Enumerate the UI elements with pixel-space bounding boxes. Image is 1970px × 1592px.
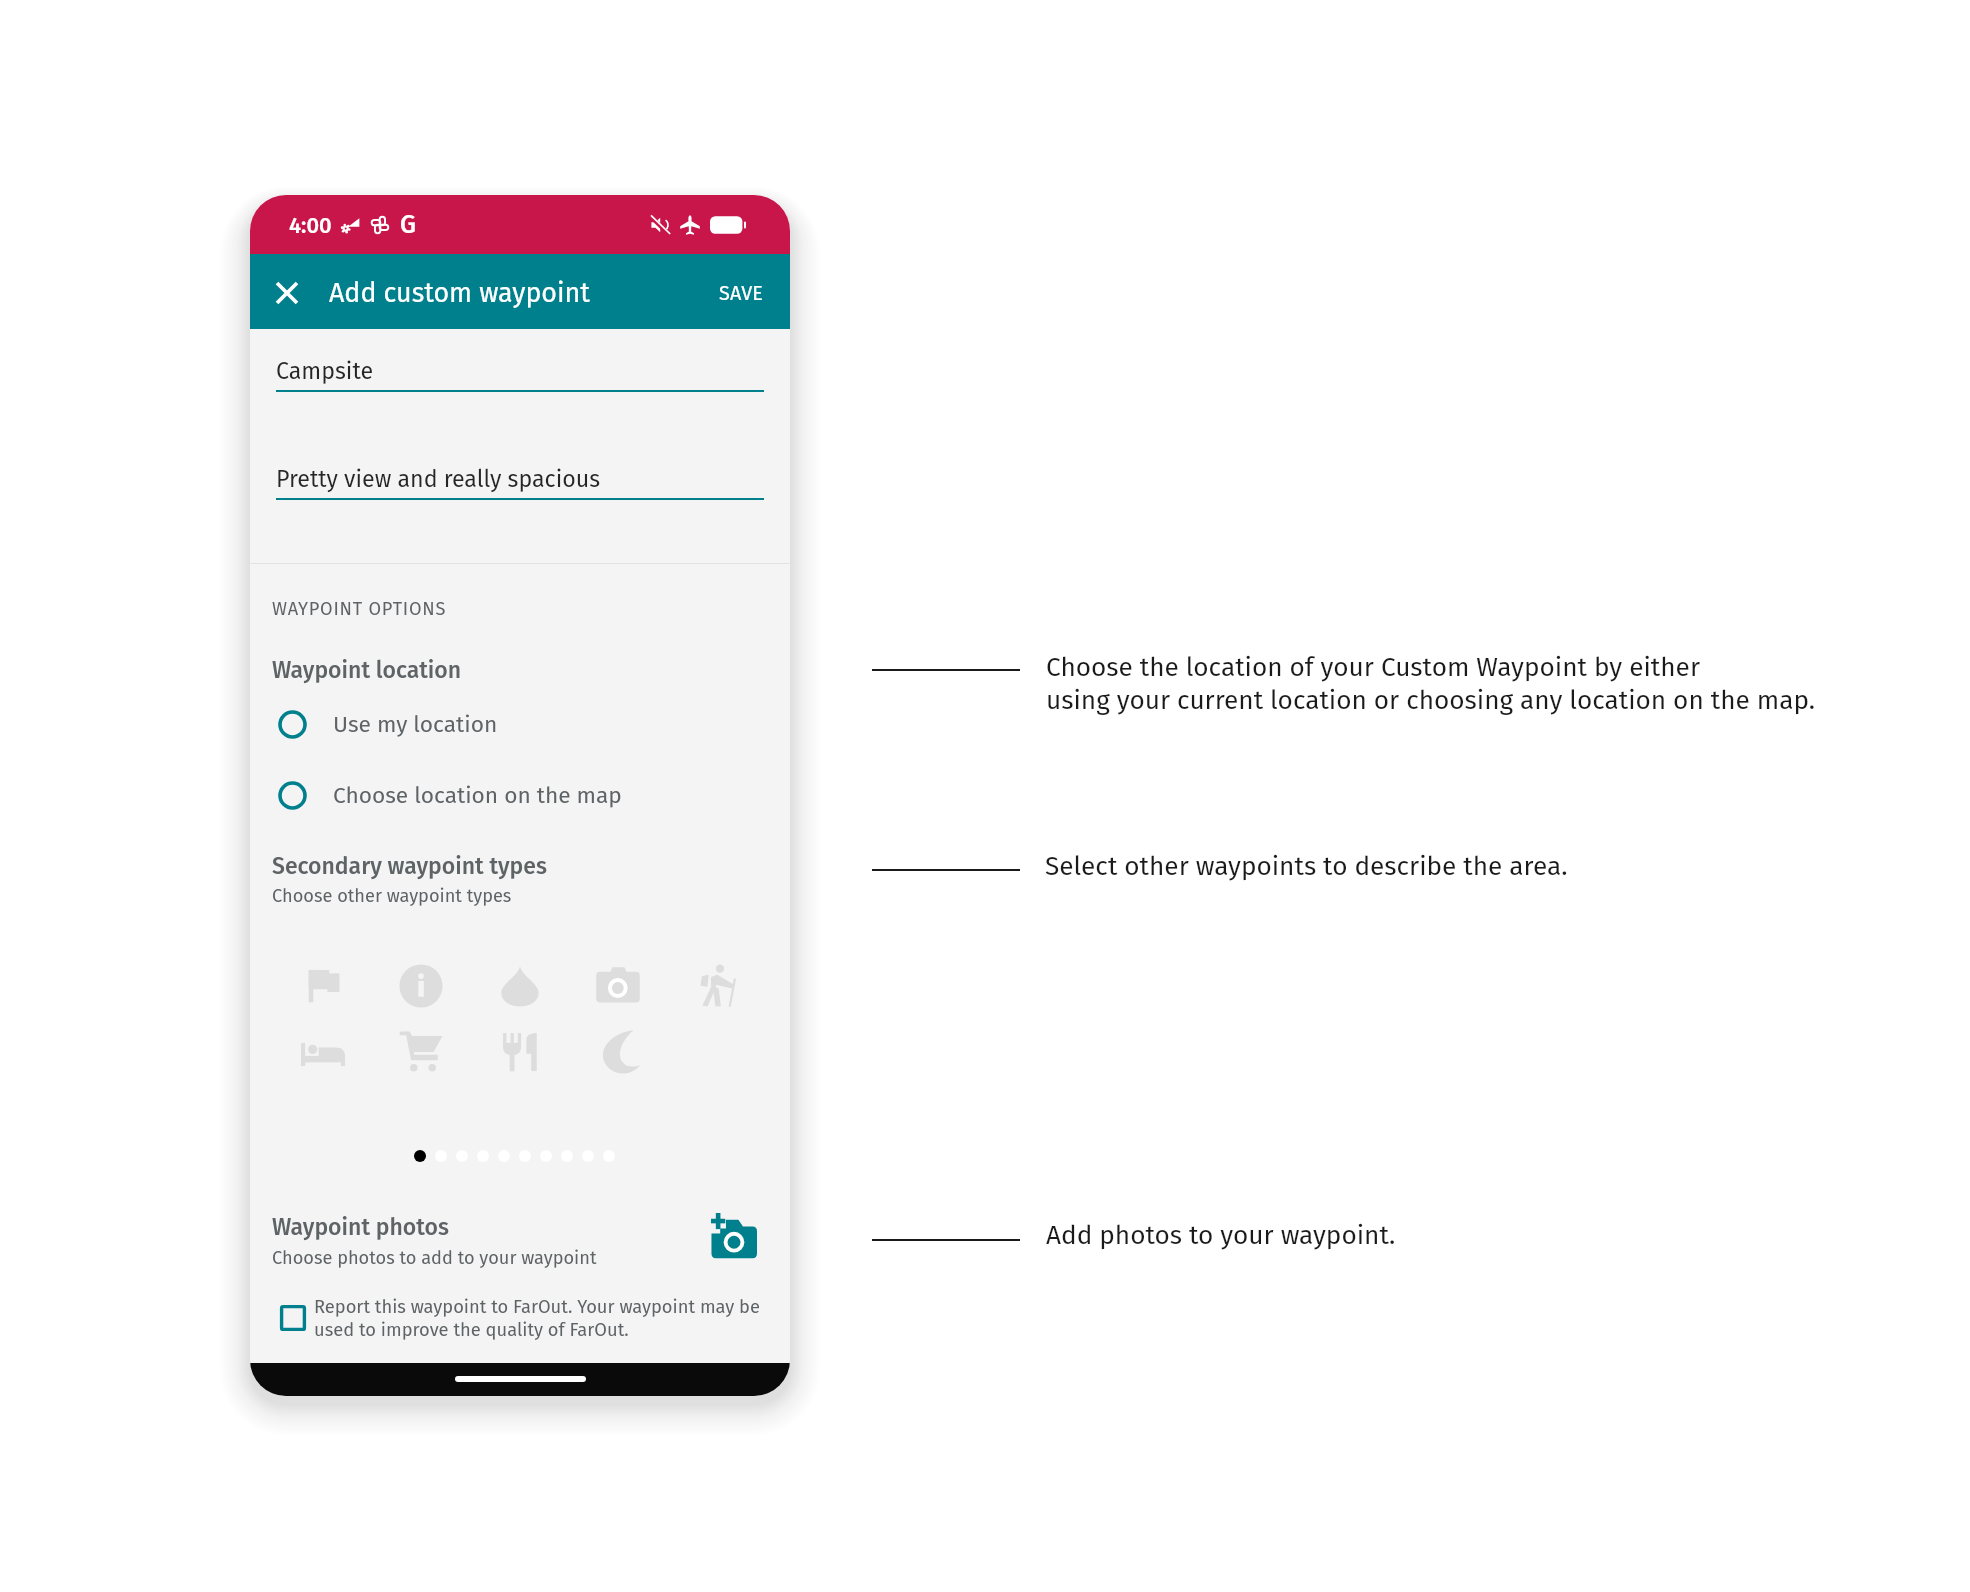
staticText: Use my location [333,711,498,738]
staticText: Select other waypoints to describe the a… [1045,851,1568,882]
button[interactable]: Page 2 [435,1150,447,1162]
staticText: G [400,210,416,240]
button[interactable]: Add photo [711,1213,757,1259]
button[interactable]: Report this waypoint to FarOut. Your way… [280,1294,772,1342]
button[interactable]: Page 10 [603,1150,615,1162]
button[interactable]: Flag waypoint [301,964,345,1008]
button[interactable]: Page 7 [540,1150,552,1162]
staticText: SAVE [719,281,764,305]
staticText: Choose location on the map [333,782,622,809]
staticText: Waypoint location [272,656,462,684]
button[interactable]: Photo waypoint [596,964,640,1008]
button[interactable]: Page 4 [477,1150,489,1162]
staticText: Add photos to your waypoint. [1046,1220,1396,1251]
button[interactable]: Page 5 [498,1150,510,1162]
staticText: Waypoint photos [272,1213,449,1241]
button[interactable]: Lodging waypoint [301,1030,345,1074]
staticText: WAYPOINT OPTIONS [272,598,447,620]
button[interactable]: Use my location [250,698,790,750]
button[interactable]: Page 1 [414,1150,426,1162]
button[interactable]: Close [263,268,311,316]
button[interactable]: Page 3 [456,1150,468,1162]
button[interactable]: Page 6 [519,1150,531,1162]
staticText: Choose other waypoint types [272,885,512,907]
button[interactable]: Info waypoint [399,964,443,1008]
staticText: Pretty view and really spacious [276,465,601,493]
staticText: 4:00 [289,212,332,238]
staticText: Choose photos to add to your waypoint [272,1247,597,1269]
button[interactable]: Waypoint photos [250,1211,790,1285]
button[interactable]: Resupply waypoint [399,1030,443,1074]
button[interactable]: Water waypoint [498,964,542,1008]
button[interactable]: Food waypoint [498,1030,542,1074]
button[interactable]: Choose location on the map [250,769,790,821]
button[interactable]: Trail waypoint [698,964,742,1008]
button[interactable]: Pretty view and really spacious [250,451,790,515]
staticText: Campsite [276,357,374,385]
button[interactable]: SAVE [693,265,790,319]
staticText: Report this waypoint to FarOut. Your way… [314,1296,772,1341]
button[interactable]: Night waypoint [596,1030,640,1074]
button[interactable]: Campsite [250,343,790,407]
staticText: Choose the location of your Custom Waypo… [1046,652,1815,716]
button[interactable]: Page 8 [561,1150,573,1162]
staticText: Secondary waypoint types [272,852,547,880]
staticText: Add custom waypoint [329,277,590,309]
button[interactable]: Page 9 [582,1150,594,1162]
